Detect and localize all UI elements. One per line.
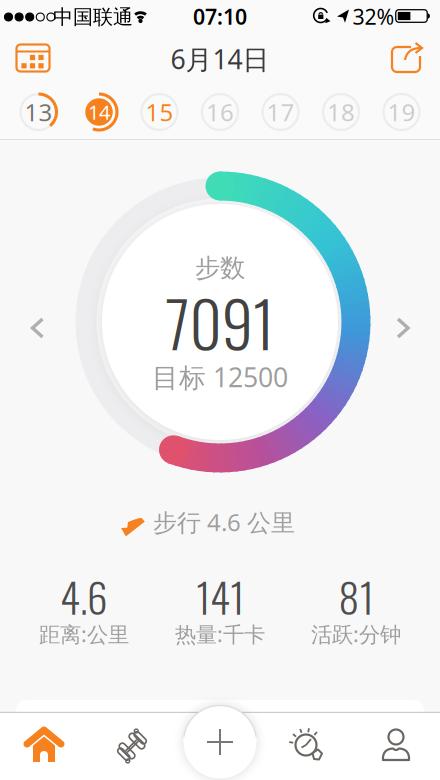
staticText: 中国联通 bbox=[53, 5, 133, 29]
staticText: 活跃:分钟 bbox=[311, 620, 401, 648]
staticText: 7091 bbox=[165, 276, 274, 368]
staticText: 81 bbox=[338, 565, 373, 627]
staticText: 6月14日 bbox=[170, 41, 269, 77]
button[interactable]: Calendar bbox=[11, 38, 55, 78]
button[interactable]: Training bbox=[102, 718, 162, 774]
staticText: 13 bbox=[24, 96, 52, 128]
button[interactable]: Previous day bbox=[16, 309, 56, 347]
button[interactable]: 6月14日 bbox=[75, 88, 123, 136]
button[interactable]: Next day bbox=[384, 309, 424, 347]
staticText: 热量:千卡 bbox=[175, 620, 265, 648]
staticText: 14 bbox=[88, 99, 110, 125]
button[interactable]: Add activity bbox=[183, 709, 257, 779]
staticText: 19 bbox=[387, 96, 415, 128]
staticText: 步行 4.6 公里 bbox=[153, 506, 295, 538]
staticText: 15 bbox=[145, 96, 173, 128]
button[interactable]: 6月17日 bbox=[256, 88, 304, 136]
button[interactable]: 6月18日 bbox=[317, 88, 365, 136]
staticText: 4.6 bbox=[60, 565, 108, 627]
button[interactable]: Home bbox=[14, 718, 74, 774]
staticText: 17 bbox=[266, 96, 294, 128]
staticText: 18 bbox=[327, 96, 355, 128]
staticText: 32% bbox=[352, 2, 394, 31]
staticText: 141 bbox=[196, 565, 244, 627]
button[interactable]: 6月15日 bbox=[135, 88, 183, 136]
button[interactable]: Discover bbox=[278, 718, 338, 774]
button[interactable]: 6月19日 bbox=[377, 88, 425, 136]
button[interactable]: Share bbox=[385, 38, 429, 78]
staticText: 距离:公里 bbox=[39, 620, 129, 648]
staticText: 07:10 bbox=[193, 2, 247, 31]
button[interactable]: Profile bbox=[366, 718, 426, 774]
staticText: 步数 bbox=[195, 252, 245, 283]
button[interactable]: 6月13日 bbox=[14, 88, 62, 136]
button[interactable]: 6月16日 bbox=[196, 88, 244, 136]
staticText: 目标 12500 bbox=[152, 359, 288, 395]
staticText: 16 bbox=[206, 96, 234, 128]
